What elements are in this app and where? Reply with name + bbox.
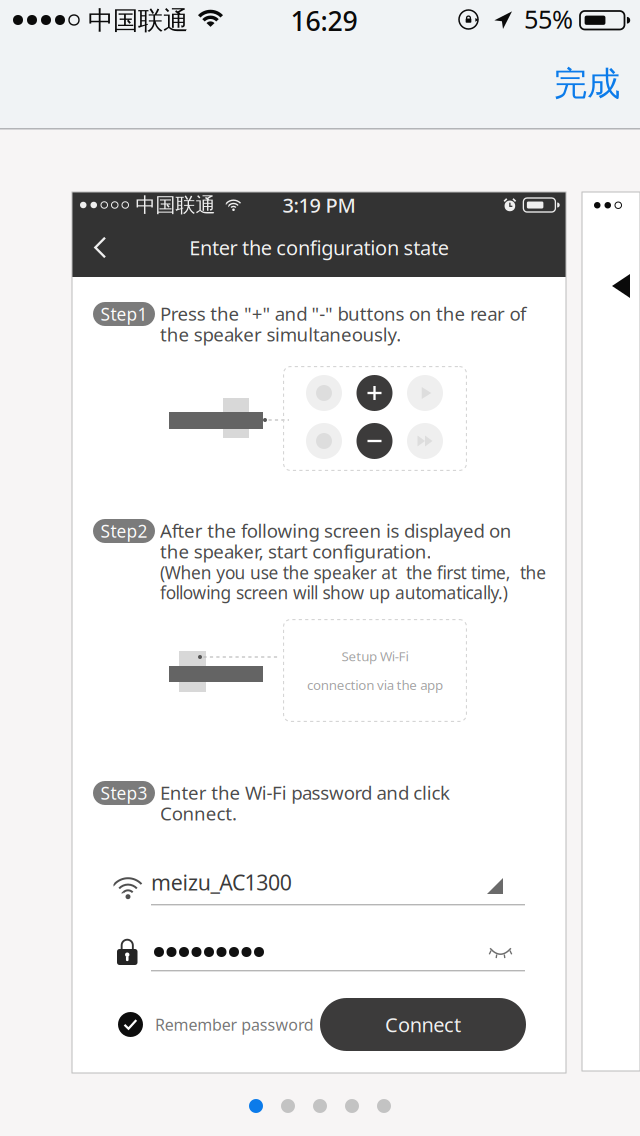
staticText: Connect [385,1011,461,1038]
button[interactable]: 完成 [532,47,640,120]
staticText: After the following screen is displayed … [160,518,512,564]
staticText: 55% [524,2,573,36]
staticText: Enter the Wi-Fi password and click Conne… [160,780,450,826]
staticText: 完成 [554,63,620,104]
staticText: Step1 [100,302,147,325]
staticText: 3:19 PM [282,192,355,218]
staticText: 中国联通 [88,5,188,36]
staticText: Remember password [155,1014,314,1035]
staticText: connection via the app [307,676,443,694]
staticText: Press the "+" and "-" buttons on the rea… [160,301,526,347]
staticText: (When you use the speaker at the first t… [160,561,546,604]
button[interactable]: Remember password [118,998,314,1051]
staticText: Setup Wi-Fi [341,647,408,665]
staticText: Step2 [100,519,147,542]
staticText: Step3 [100,781,147,804]
staticText: Enter the configuration state [189,234,449,261]
button[interactable]: Back [72,222,122,272]
staticText: meizu_AC1300 [151,868,292,896]
button[interactable]: Connect [320,998,526,1051]
staticText: 中国联通 [135,193,215,217]
staticText: 16:29 [290,3,357,38]
